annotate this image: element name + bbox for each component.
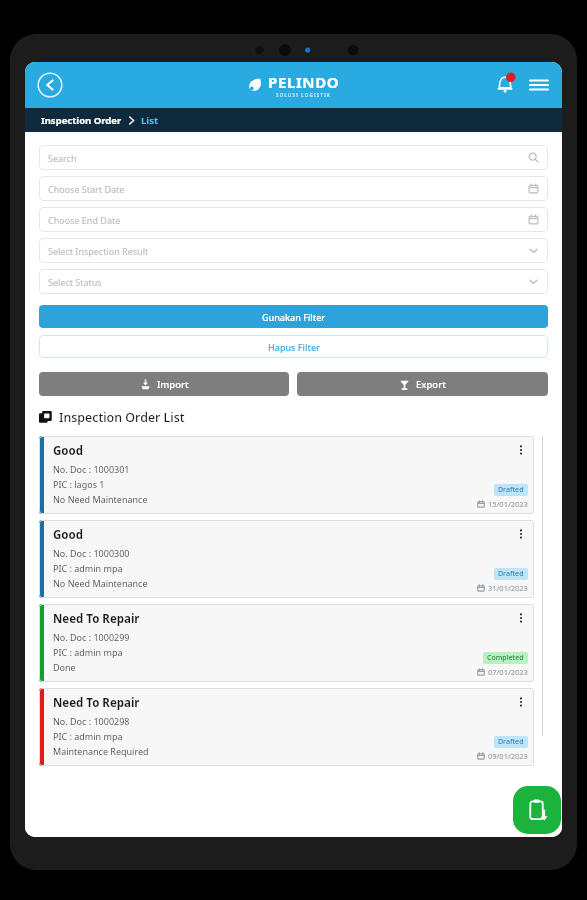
staticText: Gunakan Filter	[262, 311, 326, 323]
button[interactable]: Import	[39, 372, 289, 396]
button[interactable]: Add inspection order	[513, 786, 561, 834]
button[interactable]: More options	[514, 695, 528, 709]
staticText: SOLUSI LOGISTIK	[276, 92, 332, 98]
staticText: Good	[53, 443, 83, 459]
staticText: Drafted	[498, 485, 524, 495]
staticText: Hapus Filter	[268, 341, 320, 353]
staticText: 15/01/2023	[488, 499, 528, 509]
staticText: Export	[416, 378, 446, 391]
button[interactable]: Choose Start Date	[39, 176, 548, 201]
staticText: Maintenance Required	[53, 745, 149, 757]
button[interactable]: Need To Repair	[39, 688, 534, 766]
staticText: Search	[48, 152, 528, 164]
button[interactable]: Back	[37, 72, 63, 98]
button[interactable]: Choose End Date	[39, 207, 548, 232]
staticText: Completed	[487, 653, 524, 663]
button[interactable]: Menu	[528, 74, 550, 96]
staticText: PIC : admin mpa	[53, 730, 123, 742]
staticText: Inspection Order List	[59, 409, 185, 426]
button[interactable]: Good	[39, 436, 534, 514]
staticText: Choose Start Date	[48, 183, 528, 195]
staticText: Import	[157, 378, 189, 391]
staticText: No. Doc : 1000300	[53, 547, 130, 559]
staticText: 07/01/2023	[488, 667, 528, 677]
staticText: Need To Repair	[53, 695, 140, 711]
button[interactable]: Select Status	[39, 269, 548, 294]
staticText: Done	[53, 661, 76, 673]
staticText: PIC : lagos 1	[53, 478, 105, 490]
staticText: No. Doc : 1000298	[53, 715, 130, 727]
button[interactable]: More options	[514, 611, 528, 625]
button[interactable]: Search	[39, 145, 548, 170]
staticText: No. Doc : 1000301	[53, 463, 130, 475]
staticText: Select Inspection Result	[48, 245, 528, 257]
button[interactable]: Export	[297, 372, 548, 396]
staticText: PELINDO	[268, 72, 340, 92]
button[interactable]: Gunakan Filter	[39, 305, 548, 328]
staticText: Select Status	[48, 276, 528, 288]
staticText: PIC : admin mpa	[53, 562, 123, 574]
button[interactable]: Need To Repair	[39, 604, 534, 682]
button[interactable]: Select Inspection Result	[39, 238, 548, 263]
staticText: Need To Repair	[53, 611, 140, 627]
button[interactable]: Notifications	[494, 73, 518, 97]
staticText: Good	[53, 527, 83, 543]
button[interactable]: Hapus Filter	[39, 335, 548, 358]
button[interactable]: Good	[39, 520, 534, 598]
staticText: Drafted	[498, 737, 524, 747]
staticText: Choose End Date	[48, 214, 528, 226]
button[interactable]: More options	[514, 443, 528, 457]
button[interactable]: More options	[514, 527, 528, 541]
staticText: Inspection Order	[41, 114, 122, 127]
staticText: PIC : admin mpa	[53, 646, 123, 658]
staticText: No Need Maintenance	[53, 493, 148, 505]
staticText: No Need Maintenance	[53, 577, 148, 589]
staticText: 31/01/2023	[488, 583, 528, 593]
staticText: Drafted	[498, 569, 524, 579]
staticText: 09/01/2023	[488, 751, 528, 761]
staticText: List	[141, 114, 159, 127]
staticText: No. Doc : 1000299	[53, 631, 130, 643]
